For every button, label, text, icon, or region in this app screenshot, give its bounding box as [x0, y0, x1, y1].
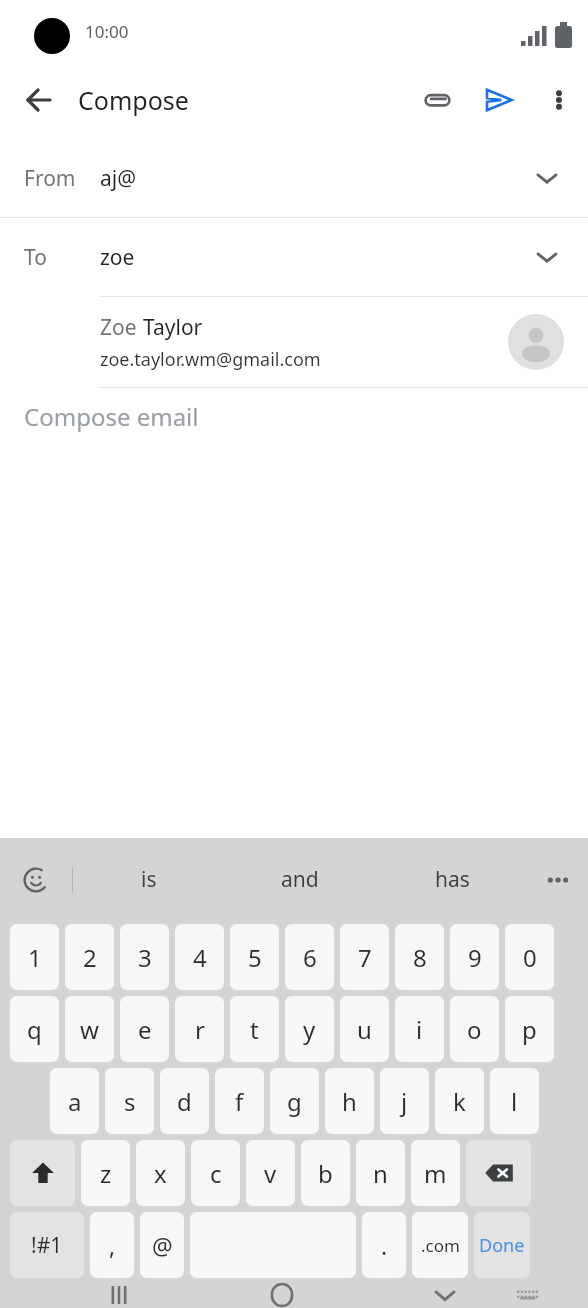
button[interactable]: x — [136, 1140, 185, 1206]
button[interactable]: 4 — [175, 924, 224, 990]
button[interactable]: h — [325, 1068, 374, 1134]
button[interactable]: 7 — [340, 924, 389, 990]
staticText: 10:00 — [85, 20, 129, 43]
staticText: y — [303, 1013, 316, 1046]
staticText: g — [287, 1085, 302, 1118]
staticText: From — [24, 164, 100, 193]
button[interactable]: .com — [412, 1212, 468, 1278]
button[interactable]: v — [246, 1140, 295, 1206]
button[interactable]: 3 — [120, 924, 169, 990]
button[interactable]: u — [340, 996, 389, 1062]
button[interactable]: p — [505, 996, 554, 1062]
button[interactable]: key — [10, 1140, 75, 1206]
staticText: i — [416, 1013, 423, 1046]
button[interactable]: r — [175, 996, 224, 1062]
staticText: 9 — [468, 941, 482, 974]
button[interactable]: 5 — [230, 924, 279, 990]
staticText: zoe — [100, 243, 135, 272]
button[interactable]: key — [466, 1140, 531, 1206]
button[interactable]: g — [270, 1068, 319, 1134]
button[interactable]: 9 — [450, 924, 499, 990]
staticText: c — [210, 1157, 222, 1190]
button[interactable]: c — [191, 1140, 240, 1206]
button[interactable]: Emoji — [0, 838, 72, 921]
button[interactable]: 8 — [395, 924, 444, 990]
button[interactable]: Send — [468, 62, 530, 138]
button[interactable]: t — [230, 996, 279, 1062]
button[interactable]: o — [450, 996, 499, 1062]
staticText: m — [424, 1157, 447, 1190]
button[interactable]: Home — [237, 1281, 327, 1308]
staticText: o — [467, 1013, 482, 1046]
button[interactable]: To — [0, 218, 588, 296]
staticText: r — [195, 1013, 205, 1046]
button[interactable]: !#1 — [10, 1212, 84, 1278]
button[interactable]: j — [380, 1068, 429, 1134]
button[interactable]: Attach file — [406, 62, 468, 138]
button[interactable]: Keyboard layout — [490, 1281, 566, 1308]
staticText: 3 — [138, 941, 152, 974]
button[interactable]: is — [73, 838, 224, 921]
staticText: Done — [479, 1233, 525, 1258]
button[interactable]: More suggestions — [528, 838, 588, 921]
staticText: p — [522, 1013, 537, 1046]
staticText: 6 — [303, 941, 317, 974]
button[interactable]: and — [224, 838, 376, 921]
button[interactable]: m — [411, 1140, 460, 1206]
staticText: s — [124, 1085, 136, 1118]
button[interactable]: w — [65, 996, 114, 1062]
staticText: e — [138, 1013, 152, 1046]
button[interactable]: From — [0, 138, 588, 218]
staticText: .com — [421, 1234, 460, 1257]
button[interactable]: , — [90, 1212, 134, 1278]
button[interactable]: s — [105, 1068, 154, 1134]
button[interactable]: . — [362, 1212, 406, 1278]
staticText: b — [318, 1157, 333, 1190]
button[interactable]: Hide keyboard — [400, 1281, 490, 1308]
button[interactable]: @ — [140, 1212, 184, 1278]
button[interactable]: i — [395, 996, 444, 1062]
button[interactable]: Recent apps — [74, 1281, 164, 1308]
staticText: h — [342, 1085, 357, 1118]
button[interactable]: f — [215, 1068, 264, 1134]
button[interactable]: z — [81, 1140, 130, 1206]
button[interactable]: l — [490, 1068, 539, 1134]
staticText: Taylor — [143, 313, 203, 342]
button[interactable]: has — [376, 838, 528, 921]
staticText: 7 — [358, 941, 372, 974]
staticText: has — [435, 865, 470, 894]
staticText: u — [357, 1013, 372, 1046]
button[interactable]: 0 — [505, 924, 554, 990]
staticText: 4 — [193, 941, 207, 974]
staticText: @ — [152, 1230, 173, 1261]
button[interactable]: 2 — [65, 924, 114, 990]
button[interactable]: More options — [530, 62, 588, 138]
staticText: zoe.taylor.wm@gmail.com — [100, 347, 321, 372]
button[interactable]: k — [435, 1068, 484, 1134]
staticText: w — [80, 1013, 99, 1046]
button[interactable]: Compose email — [0, 388, 588, 838]
button[interactable]: 6 — [285, 924, 334, 990]
button[interactable]: Back — [0, 62, 78, 138]
button[interactable]: d — [160, 1068, 209, 1134]
button[interactable]: n — [356, 1140, 405, 1206]
staticText: . — [381, 1230, 388, 1261]
button[interactable]: Zoe — [0, 297, 588, 387]
button[interactable]: e — [120, 996, 169, 1062]
staticText: Compose email — [24, 400, 199, 433]
staticText: d — [177, 1085, 192, 1118]
staticText: f — [235, 1085, 244, 1118]
staticText: 0 — [523, 941, 537, 974]
button[interactable]: y — [285, 996, 334, 1062]
button[interactable]: a — [50, 1068, 99, 1134]
button[interactable]: b — [301, 1140, 350, 1206]
staticText: !#1 — [31, 1231, 63, 1260]
staticText: , — [109, 1230, 116, 1261]
button[interactable]: Done — [474, 1212, 530, 1278]
button[interactable]: q — [10, 996, 59, 1062]
staticText: a — [68, 1085, 82, 1118]
staticText: q — [27, 1013, 42, 1046]
staticText: j — [401, 1085, 408, 1118]
button[interactable]: 1 — [10, 924, 59, 990]
